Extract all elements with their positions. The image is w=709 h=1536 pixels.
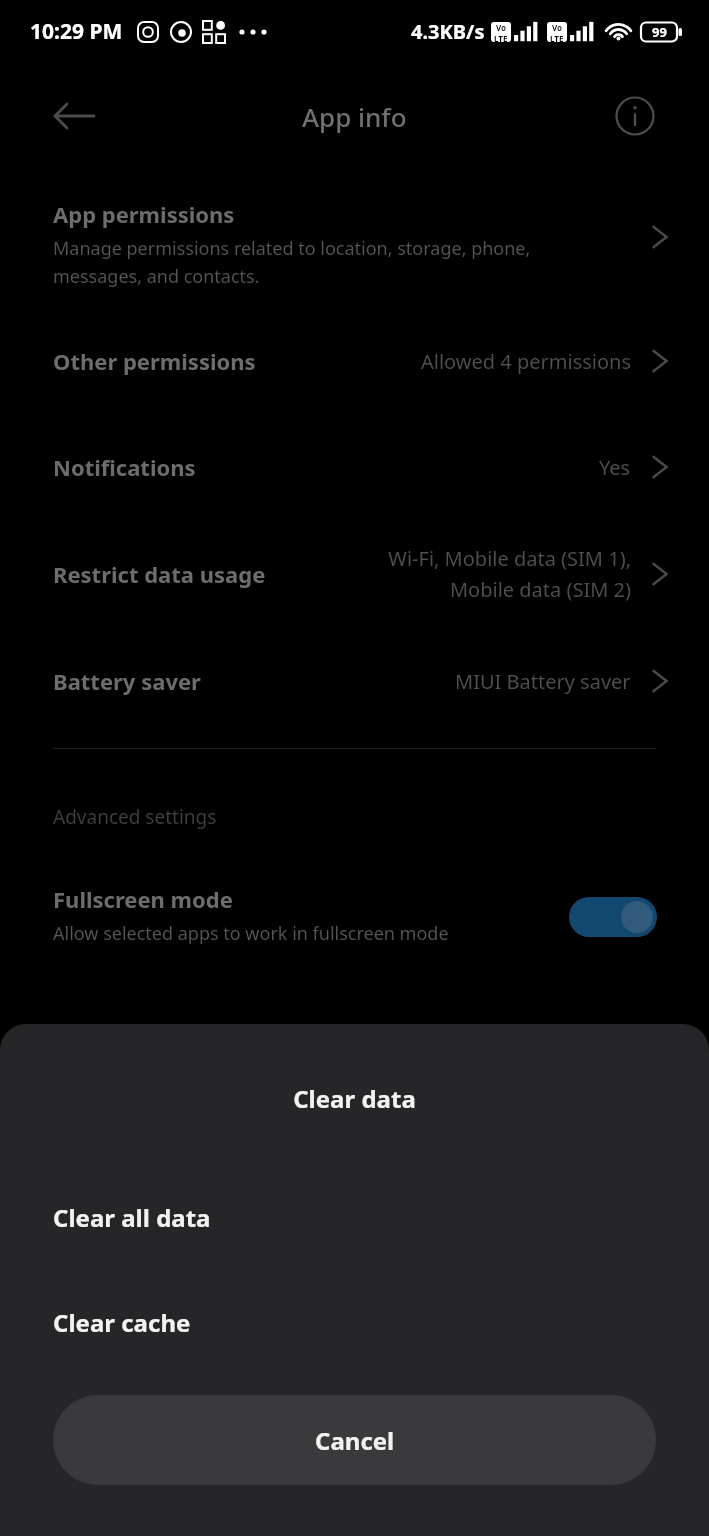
staticText: Allow selected apps to work in fullscree… xyxy=(53,921,449,946)
staticText: Wi-Fi, Mobile data (SIM 1), Mobile data … xyxy=(346,545,631,603)
staticText: Allowed 4 permissions xyxy=(421,348,631,375)
staticText: Restrict data usage xyxy=(53,559,266,589)
staticText: 4.3KB/s xyxy=(411,18,485,45)
staticText: Battery saver xyxy=(53,666,201,696)
staticText: Clear data xyxy=(0,1082,709,1115)
staticText: Vo xyxy=(496,22,507,33)
button[interactable]: Other permissions xyxy=(0,308,709,414)
staticText: LTE xyxy=(550,33,564,42)
staticText: Fullscreen mode xyxy=(53,884,233,914)
staticText: Yes xyxy=(599,454,631,481)
staticText: Clear all data xyxy=(53,1201,211,1234)
button[interactable]: App details xyxy=(606,87,664,145)
button[interactable]: Fullscreen mode toggle xyxy=(569,897,657,937)
button[interactable]: Battery saver xyxy=(0,628,709,734)
staticText: 10:29 PM xyxy=(30,17,123,46)
staticText: 99 xyxy=(652,23,667,41)
button[interactable]: App permissions xyxy=(0,178,709,308)
staticText: Cancel xyxy=(315,1424,395,1457)
button[interactable]: Back xyxy=(42,84,106,148)
staticText: Advanced settings xyxy=(53,804,217,830)
staticText: Other permissions xyxy=(53,346,256,376)
staticText: App permissions xyxy=(53,199,235,229)
button[interactable]: Clear cache xyxy=(0,1270,709,1375)
staticText: MIUI Battery saver xyxy=(455,668,631,695)
button[interactable]: Notifications xyxy=(0,414,709,520)
staticText: Notifications xyxy=(53,452,196,482)
staticText: Manage permissions related to location, … xyxy=(53,236,614,288)
staticText: Clear cache xyxy=(53,1306,191,1339)
button[interactable]: Cancel xyxy=(53,1395,656,1485)
staticText: App info xyxy=(302,99,407,134)
button[interactable]: Restrict data usage xyxy=(0,520,709,628)
button[interactable]: Fullscreen mode xyxy=(0,860,709,970)
button[interactable]: Clear all data xyxy=(0,1165,709,1270)
staticText: LTE xyxy=(494,33,508,42)
staticText: Vo xyxy=(552,22,563,33)
